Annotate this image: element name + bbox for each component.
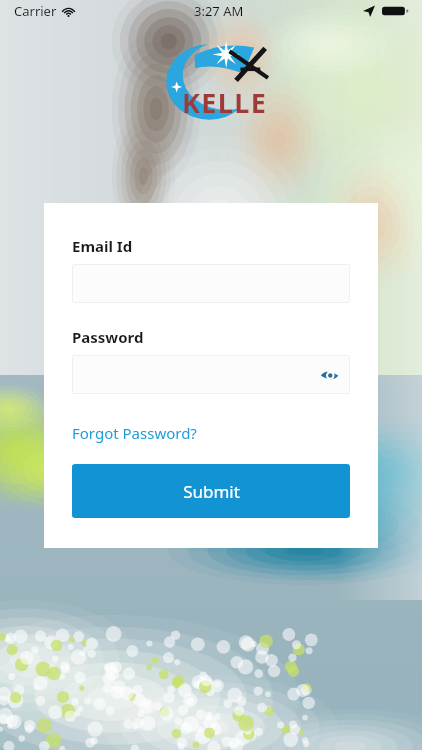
staticText: Submit (183, 480, 240, 503)
button[interactable] (72, 264, 350, 303)
button[interactable]: Submit (72, 464, 350, 518)
staticText: Carrier (14, 2, 57, 20)
staticText: 3:27 AM (194, 2, 244, 20)
button[interactable]: Forgot Password? (72, 423, 197, 443)
button[interactable]: Show password (72, 355, 350, 394)
staticText: KELLE (182, 84, 268, 121)
staticText: Email Id (72, 236, 133, 256)
button[interactable]: Show password (317, 363, 341, 387)
staticText: Password (72, 327, 144, 347)
